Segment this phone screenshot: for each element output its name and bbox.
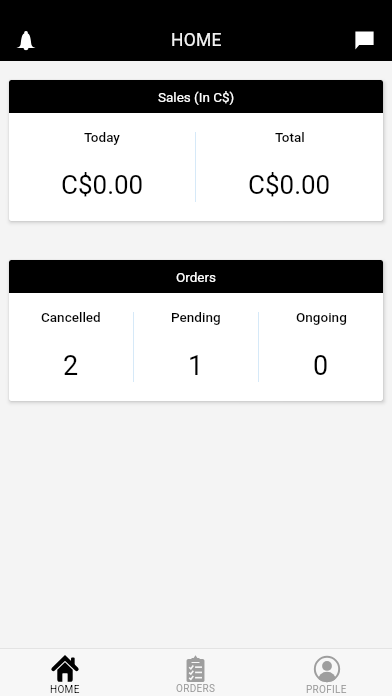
staticText: 1 — [188, 350, 204, 382]
button[interactable]: Sales (In C$) — [9, 80, 383, 221]
staticText: Ongoing — [296, 309, 347, 325]
staticText: Pending — [171, 309, 221, 325]
staticText: C$0.00 — [61, 170, 144, 200]
button[interactable]: Orders — [9, 260, 383, 401]
staticText: 0 — [313, 350, 329, 382]
staticText: ORDERS — [176, 683, 216, 695]
staticText: Sales (In C$) — [158, 89, 235, 105]
button[interactable]: Notifications — [4, 20, 48, 61]
staticText: 2 — [63, 350, 79, 382]
staticText: HOME — [50, 684, 80, 696]
staticText: PROFILE — [306, 684, 347, 696]
button[interactable]: Messages — [342, 20, 386, 61]
staticText: HOME — [171, 30, 222, 51]
staticText: Total — [275, 129, 305, 145]
staticText: C$0.00 — [248, 170, 331, 200]
button[interactable]: ORDERS — [130, 649, 261, 696]
staticText: Cancelled — [41, 309, 101, 325]
button[interactable]: PROFILE — [261, 649, 392, 696]
staticText: Orders — [176, 269, 217, 285]
staticText: Today — [84, 129, 120, 145]
button[interactable]: HOME — [0, 649, 130, 696]
